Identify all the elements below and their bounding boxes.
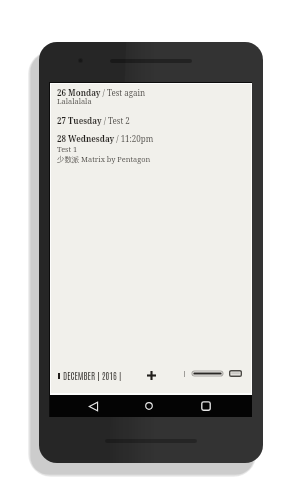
button[interactable]: Switch view [229,370,242,377]
button[interactable]: Test 1 [57,144,257,154]
button[interactable]: 26 Monday / Test again [57,87,257,98]
button[interactable]: DECEMBER | 2016 | [58,368,122,384]
staticText: Lalalalala [57,96,92,106]
staticText: DECEMBER | 2016 | [63,370,122,382]
staticText: 少数派 Matrix by Pentagon [57,154,151,164]
button[interactable]: Back [82,395,104,417]
staticText: Test 1 [57,144,78,154]
staticText: 27 Tuesday / Test 2 [57,115,130,126]
button[interactable]: Add event [143,367,160,384]
staticText: 28 Wednesday / 11:20pm [57,133,154,144]
staticText: 26 Monday / Test again [57,87,146,98]
button[interactable]: Recent apps [195,395,217,417]
button[interactable]: Zoom level [192,371,223,376]
button[interactable]: Lalalalala [57,96,257,106]
button[interactable]: 27 Tuesday / Test 2 [57,115,257,126]
button[interactable]: 28 Wednesday / 11:20pm [57,133,257,144]
button[interactable]: Home [138,395,160,417]
button[interactable]: 少数派 Matrix by Pentagon [57,154,257,164]
